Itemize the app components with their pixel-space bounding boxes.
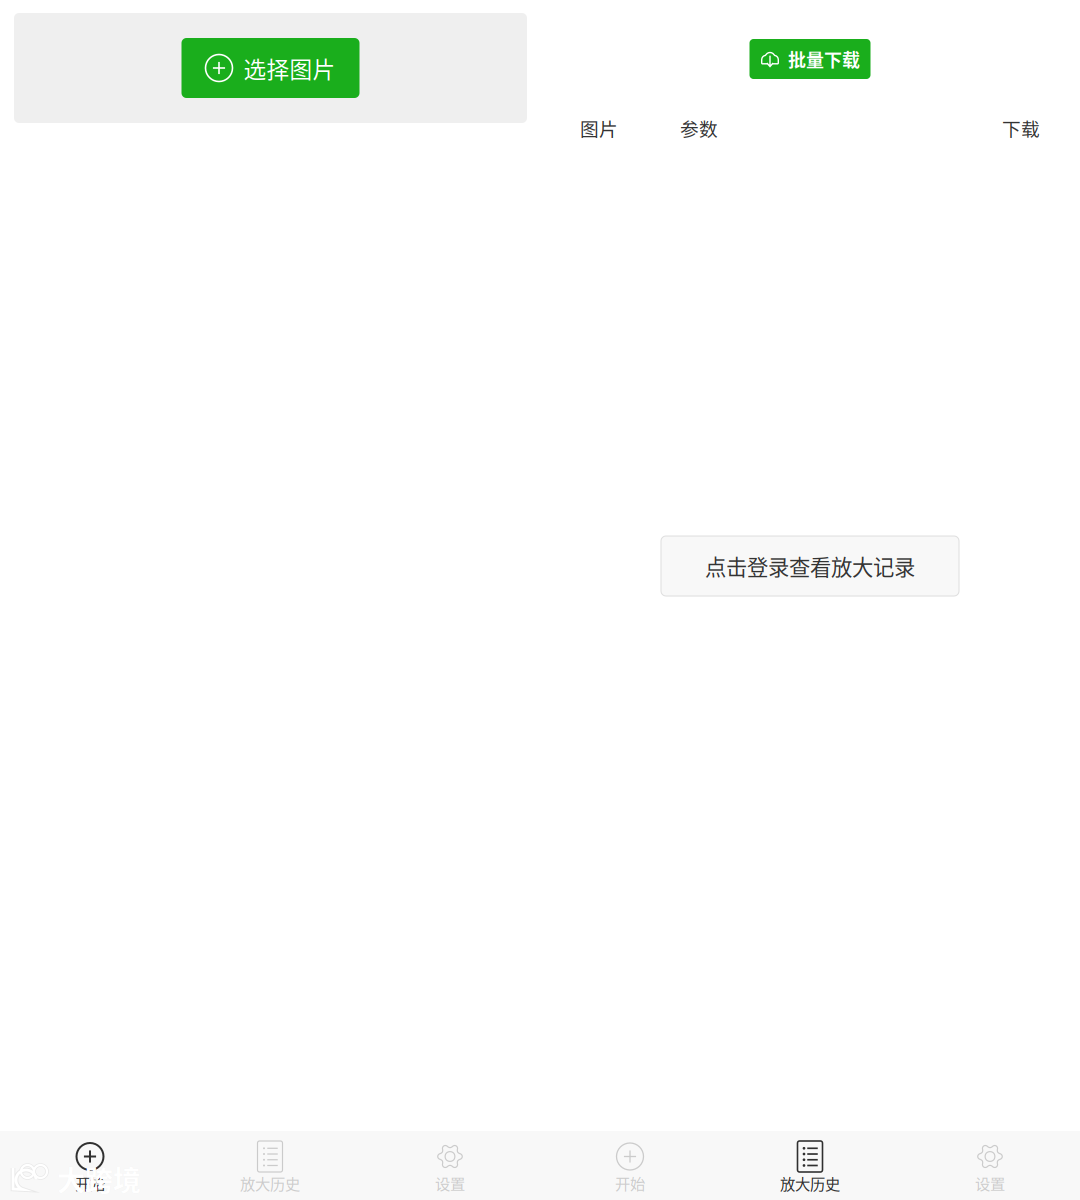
staticText: 开始 bbox=[75, 1172, 105, 1194]
button[interactable]: 设置 bbox=[900, 1131, 1080, 1200]
staticText: 选择图片 bbox=[243, 52, 335, 84]
staticText: 下载 bbox=[1002, 114, 1040, 141]
button[interactable]: 开始 bbox=[540, 1131, 720, 1200]
staticText: 大跨境 bbox=[57, 1159, 141, 1199]
button[interactable]: 选择图片 bbox=[181, 38, 359, 98]
staticText: 点击登录查看放大记录 bbox=[705, 551, 915, 581]
button[interactable]: 批量下载 bbox=[749, 39, 870, 79]
staticText: 批量下载 bbox=[788, 46, 860, 72]
staticText: 放大历史 bbox=[240, 1172, 300, 1194]
staticText: 设置 bbox=[435, 1172, 465, 1194]
button[interactable]: 设置 bbox=[360, 1131, 540, 1200]
staticText: 大跨境 bbox=[57, 1159, 141, 1199]
button[interactable]: 点击登录查看放大记录 bbox=[661, 536, 959, 596]
button[interactable]: 放大历史 bbox=[180, 1131, 360, 1200]
staticText: 开始 bbox=[615, 1172, 645, 1194]
staticText: 图片 bbox=[580, 114, 618, 141]
staticText: 参数 bbox=[680, 114, 718, 141]
button[interactable]: 放大历史 bbox=[720, 1131, 900, 1200]
button[interactable]: 开始 bbox=[0, 1131, 180, 1200]
staticText: 放大历史 bbox=[780, 1172, 840, 1194]
staticText: 设置 bbox=[975, 1172, 1005, 1194]
